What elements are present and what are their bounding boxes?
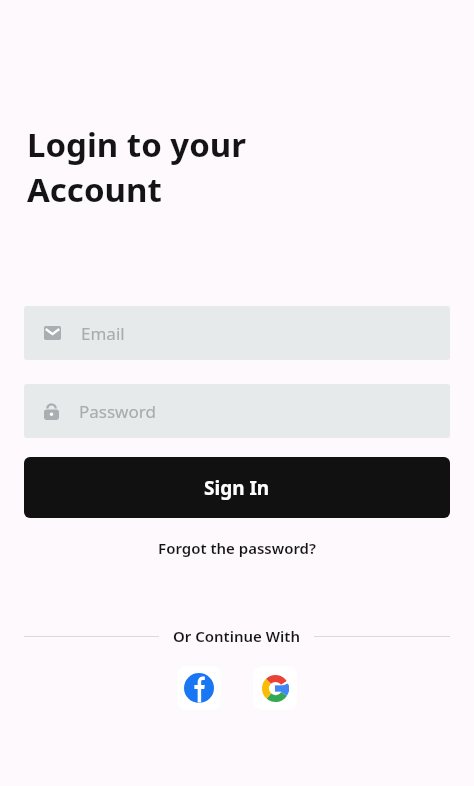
button[interactable]: Sign In — [24, 457, 450, 518]
staticText: Sign In — [204, 475, 270, 501]
button[interactable]: Forgot the password? — [0, 532, 474, 564]
staticText: Login to your — [27, 122, 247, 167]
staticText: Account — [27, 167, 162, 212]
staticText: Email — [81, 322, 125, 345]
button[interactable]: Email — [24, 306, 450, 360]
staticText: Or Continue With — [173, 626, 300, 646]
button[interactable]: Sign in with Google — [253, 666, 297, 710]
staticText: Password — [79, 400, 156, 423]
staticText: Forgot the password? — [158, 538, 316, 558]
button[interactable]: Sign in with Facebook — [177, 666, 221, 710]
button[interactable]: Password — [24, 384, 450, 438]
